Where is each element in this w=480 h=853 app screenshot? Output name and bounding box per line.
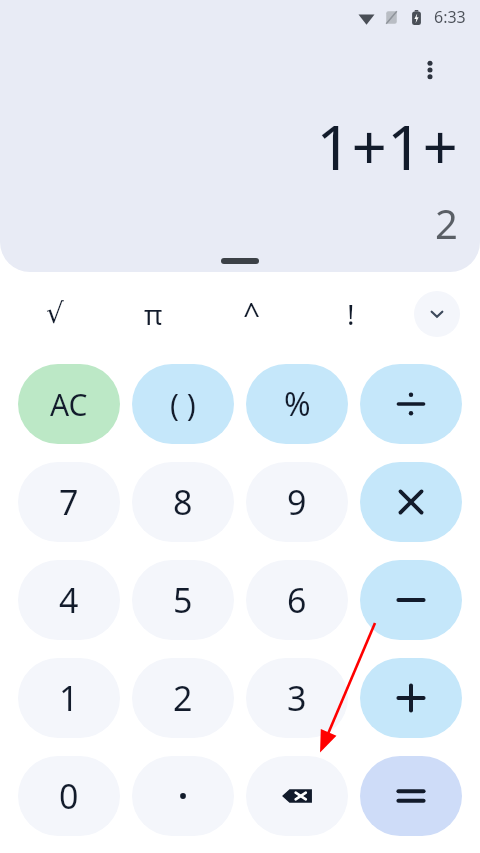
button[interactable]: 1 — [18, 658, 120, 738]
staticText: 1+1+ — [316, 104, 458, 188]
staticText: ! — [347, 295, 355, 333]
button[interactable]: ! — [301, 272, 400, 355]
button[interactable]: 0 — [18, 756, 120, 836]
button[interactable]: More options — [408, 48, 452, 92]
staticText: 9 — [287, 479, 307, 525]
staticText: 2 — [173, 675, 193, 721]
button[interactable]: Divide — [360, 364, 462, 444]
staticText: 3 — [287, 675, 307, 721]
staticText: ^ — [243, 293, 261, 334]
button[interactable]: Collapse — [414, 291, 460, 337]
button[interactable]: Decimal point — [132, 756, 234, 836]
button[interactable]: Equals — [360, 756, 462, 836]
button[interactable]: 8 — [132, 462, 234, 542]
button[interactable]: π — [104, 272, 202, 355]
button[interactable]: 9 — [246, 462, 348, 542]
button[interactable]: 7 — [18, 462, 120, 542]
button[interactable]: 5 — [132, 560, 234, 640]
button[interactable]: 3 — [246, 658, 348, 738]
button[interactable]: AC — [18, 364, 120, 444]
staticText: √ — [46, 297, 64, 330]
staticText: AC — [50, 384, 88, 425]
button[interactable]: ( ) — [132, 364, 234, 444]
staticText: % — [284, 382, 311, 426]
staticText: 5 — [173, 577, 193, 623]
button[interactable]: 4 — [18, 560, 120, 640]
staticText: 7 — [59, 479, 79, 525]
staticText: 0 — [59, 773, 79, 819]
button[interactable]: % — [246, 364, 348, 444]
button[interactable]: Multiply — [360, 462, 462, 542]
staticText: 6 — [287, 577, 307, 623]
button[interactable]: Delete — [246, 756, 348, 836]
staticText: 4 — [59, 577, 79, 623]
button[interactable]: Add — [360, 658, 462, 738]
staticText: 1 — [59, 675, 79, 721]
button[interactable]: 2 — [132, 658, 234, 738]
button[interactable]: 6 — [246, 560, 348, 640]
staticText: 2 — [435, 196, 458, 250]
staticText: 8 — [173, 479, 193, 525]
staticText: ( ) — [170, 384, 196, 425]
button[interactable]: ^ — [202, 272, 301, 355]
button[interactable]: √ — [6, 272, 104, 355]
staticText: 6:33 — [434, 6, 466, 28]
button[interactable]: Drag handle — [221, 258, 259, 264]
staticText: π — [144, 295, 163, 333]
button[interactable]: Subtract — [360, 560, 462, 640]
